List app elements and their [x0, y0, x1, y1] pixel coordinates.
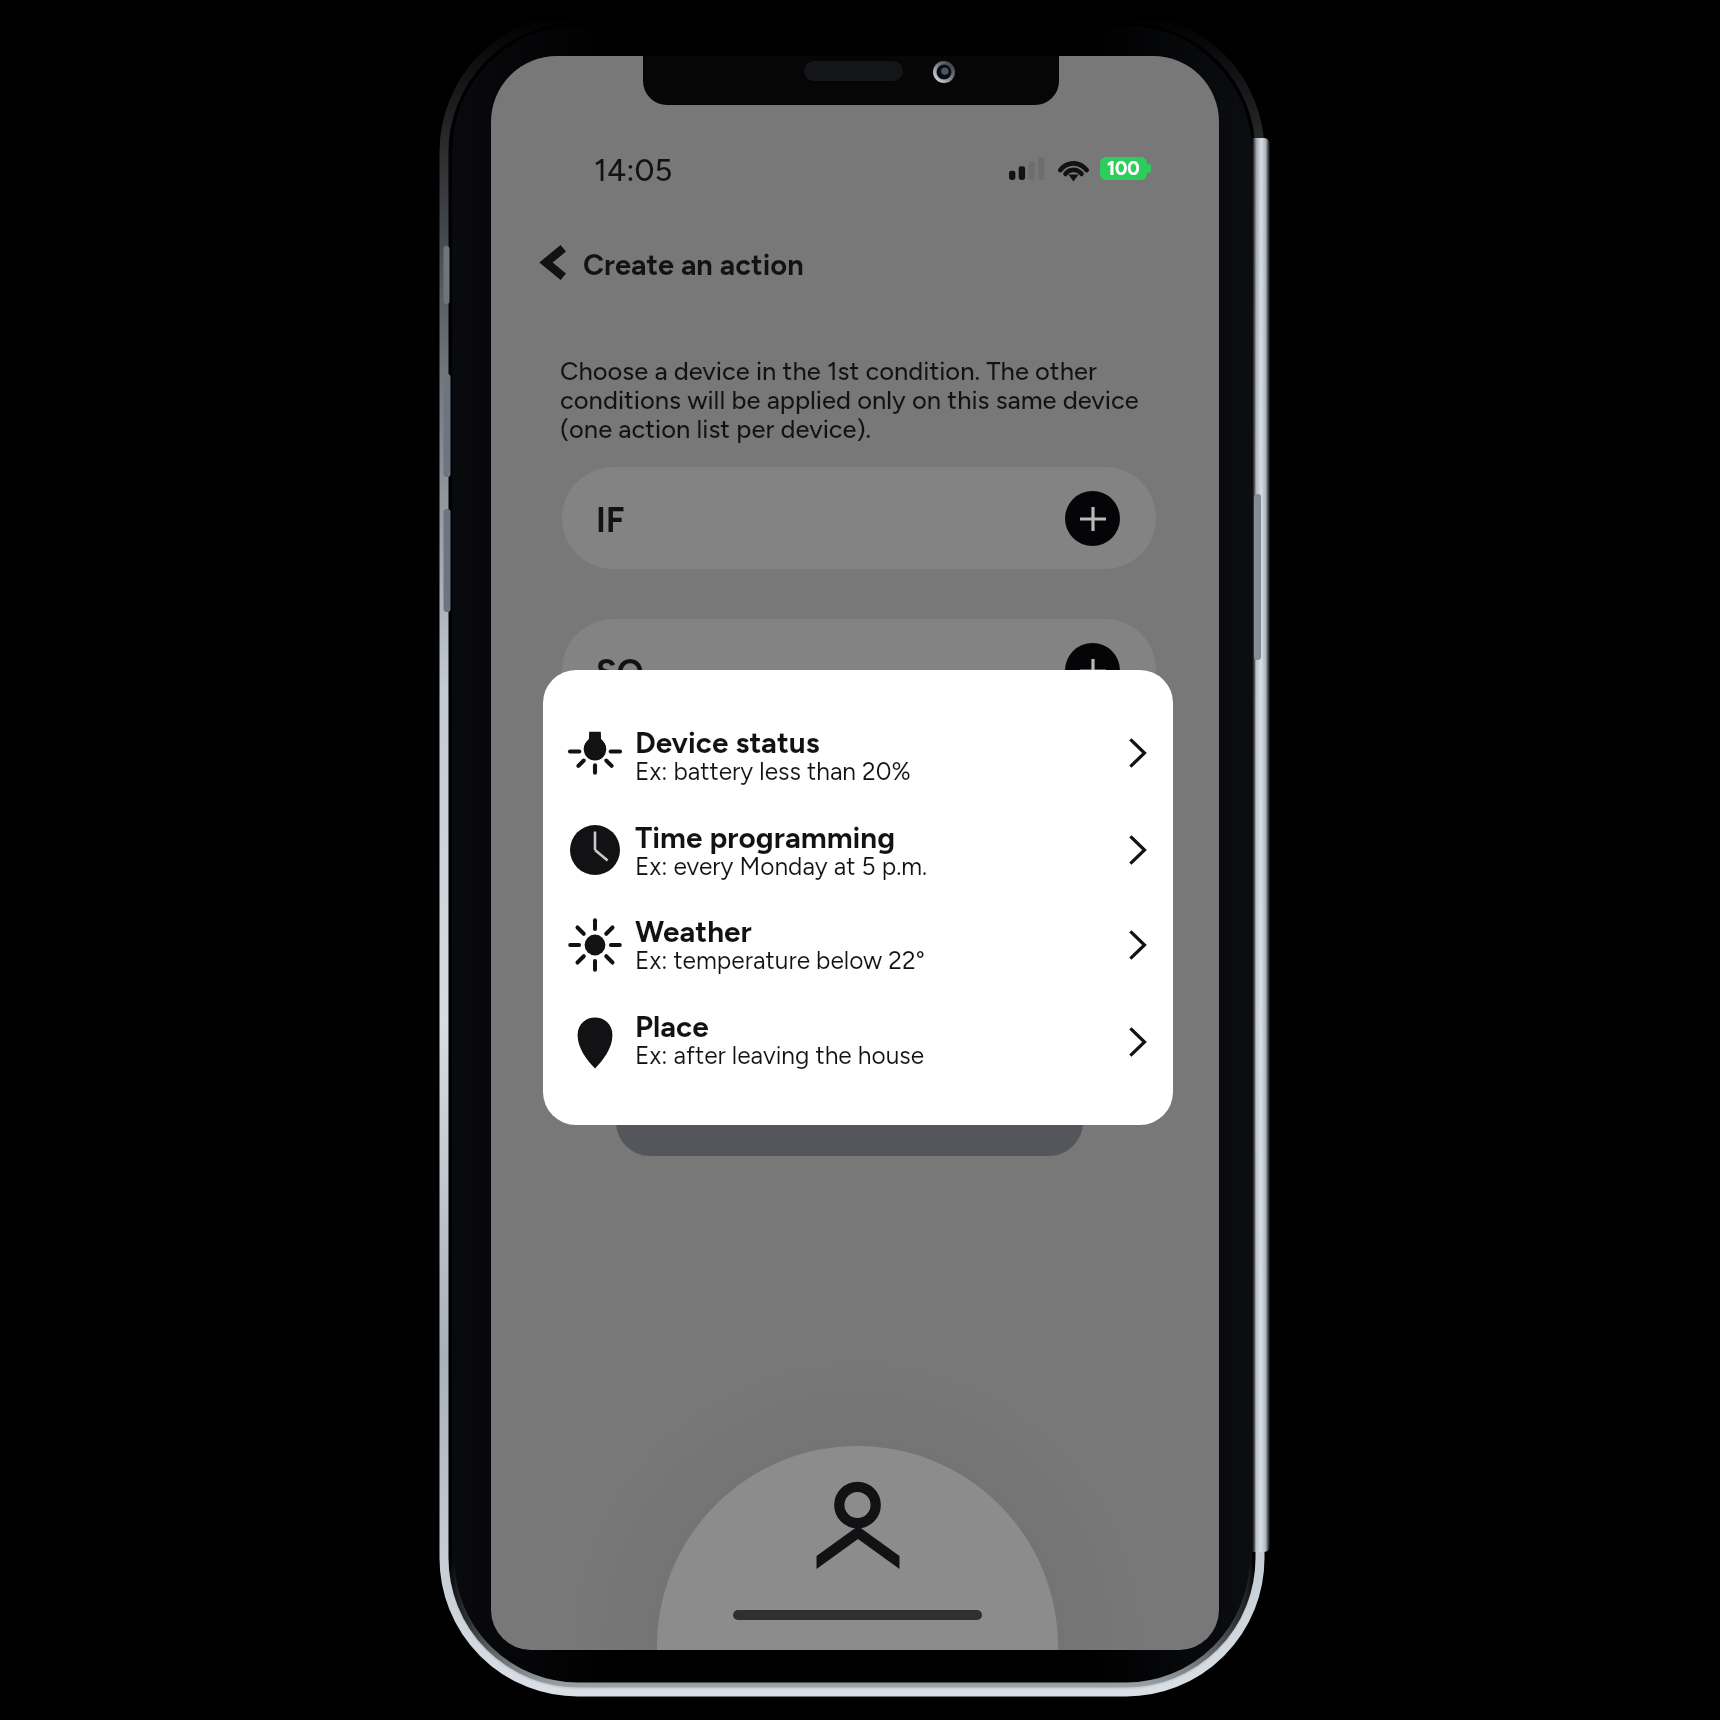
staticText: IF — [596, 500, 625, 541]
staticText: Choose a device in the 1st condition. Th… — [560, 357, 1150, 444]
staticText: Ex: after leaving the house — [635, 1044, 925, 1069]
staticText: Place — [635, 1013, 709, 1043]
button[interactable]: Profile — [657, 1446, 1058, 1650]
button[interactable]: Place — [543, 968, 1173, 1062]
staticText: Ex: every Monday at 5 p.m. — [635, 855, 928, 880]
staticText: Device status — [635, 729, 820, 759]
staticText: Ex: temperature below 22° — [635, 949, 925, 974]
button[interactable]: Weather — [543, 873, 1173, 967]
staticText: Weather — [635, 918, 752, 948]
button[interactable]: IF — [562, 467, 1156, 569]
button[interactable]: SO — [562, 619, 1156, 721]
staticText: Time programming — [635, 824, 896, 854]
button[interactable]: Back — [528, 234, 580, 286]
button[interactable]: Device status — [543, 684, 1173, 778]
staticText: Ex: battery less than 20% — [635, 760, 911, 785]
staticText: 14:05 — [594, 152, 673, 189]
button[interactable]: Add condition — [1065, 643, 1120, 698]
button[interactable]: Add condition — [1065, 491, 1120, 546]
button[interactable]: Time programming — [543, 779, 1173, 873]
staticText: SO — [596, 652, 644, 693]
staticText: Create an action — [583, 247, 804, 282]
staticText: 100 — [1107, 157, 1140, 180]
